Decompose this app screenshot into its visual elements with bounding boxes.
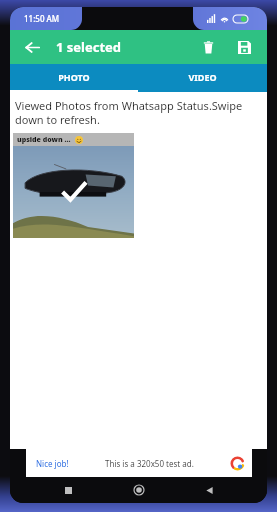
button[interactable]: VIDEO: [138, 64, 267, 90]
button[interactable]: Nice job!: [26, 449, 252, 477]
button[interactable]: Back: [20, 35, 44, 59]
button[interactable]: upside down ...: [13, 133, 134, 238]
button[interactable]: Home: [126, 477, 152, 503]
staticText: PHOTO: [58, 71, 90, 83]
staticText: 1 selected: [56, 38, 195, 56]
staticText: Viewed Photos from Whatsapp Status.Swipe…: [15, 98, 262, 127]
staticText: upside down ...: [17, 135, 71, 145]
button[interactable]: Delete: [195, 34, 221, 60]
staticText: 11:50 AM: [24, 13, 60, 24]
staticText: Nice job!: [36, 458, 69, 469]
staticText: This is a 320x50 test ad.: [105, 458, 194, 469]
staticText: VIDEO: [188, 71, 217, 83]
button[interactable]: PHOTO: [10, 64, 138, 90]
button[interactable]: Save: [231, 34, 257, 60]
button[interactable]: Back: [196, 477, 222, 503]
button[interactable]: Recents: [55, 477, 81, 503]
